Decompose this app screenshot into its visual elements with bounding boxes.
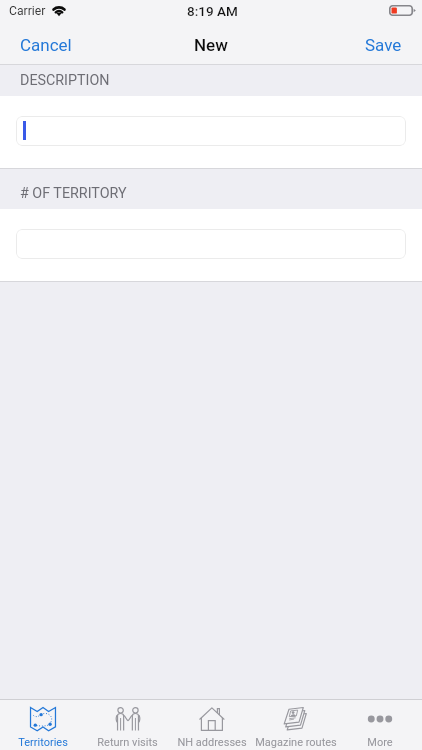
button[interactable]: Cancel [0, 27, 92, 63]
staticText: Cancel [20, 35, 72, 55]
button[interactable]: NH addresses [170, 700, 254, 750]
staticText: # OF TERRITORY [20, 185, 127, 202]
staticText: Territories [18, 736, 68, 749]
button[interactable]: Territories [0, 700, 85, 750]
staticText: Return visits [97, 736, 158, 749]
button[interactable] [16, 229, 406, 259]
button[interactable]: More [338, 700, 422, 750]
button[interactable]: Magazine routes [254, 700, 338, 750]
staticText: Save [365, 35, 402, 55]
staticText: New [194, 35, 228, 55]
staticText: 8:19 AM [187, 3, 238, 19]
staticText: More [367, 736, 393, 749]
button[interactable] [16, 116, 406, 146]
staticText: DESCRIPTION [20, 72, 110, 89]
button[interactable]: Return visits [85, 700, 170, 750]
button[interactable]: Save [345, 27, 422, 63]
staticText: Magazine routes [255, 736, 337, 749]
staticText: NH addresses [177, 736, 247, 749]
staticText: Carrier [9, 4, 46, 18]
